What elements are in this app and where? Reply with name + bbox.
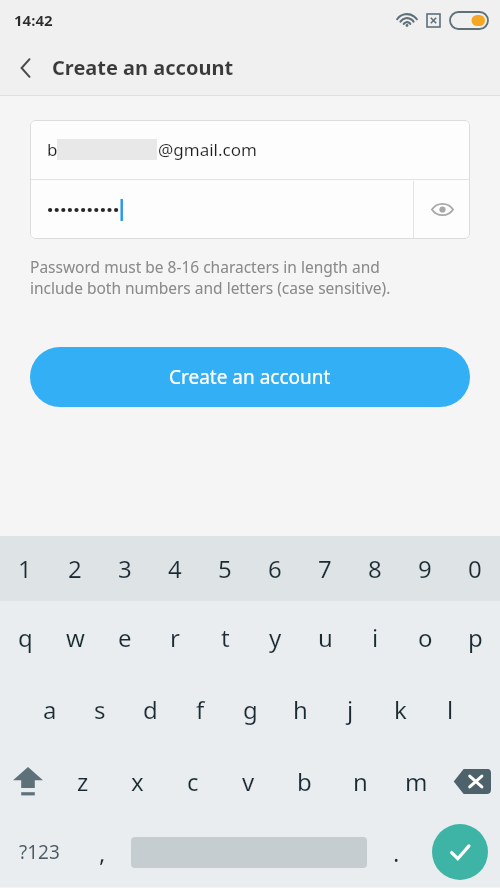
button[interactable]: h xyxy=(275,673,325,745)
staticText: u xyxy=(318,621,333,654)
staticText: g xyxy=(243,693,258,726)
staticText: o xyxy=(418,621,433,654)
button[interactable]: a xyxy=(25,673,75,745)
staticText: j xyxy=(347,693,354,726)
button[interactable]: 8 xyxy=(350,536,400,601)
button[interactable]: 4 xyxy=(150,536,200,601)
button[interactable]: 2 xyxy=(50,536,100,601)
button[interactable]: ?123 xyxy=(0,817,78,887)
button[interactable]: c xyxy=(165,745,220,817)
button[interactable]: l xyxy=(425,673,475,745)
button[interactable]: 5 xyxy=(200,536,250,601)
staticText: 7 xyxy=(318,552,332,585)
button[interactable] xyxy=(30,180,413,239)
staticText: ?123 xyxy=(19,839,60,865)
button[interactable]: 3 xyxy=(100,536,150,601)
staticText: z xyxy=(77,765,89,798)
button[interactable]: t xyxy=(200,601,250,673)
staticText: 3 xyxy=(118,552,132,585)
button[interactable]: p xyxy=(450,601,500,673)
button[interactable]: 9 xyxy=(400,536,450,601)
button[interactable]: q xyxy=(0,601,50,673)
staticText: h xyxy=(293,693,308,726)
staticText: e xyxy=(118,621,132,654)
button[interactable]: 7 xyxy=(300,536,350,601)
button[interactable]: v xyxy=(220,745,276,817)
button[interactable]: b xyxy=(276,745,332,817)
staticText: 2 xyxy=(68,552,82,585)
staticText: r xyxy=(170,621,180,654)
staticText: x xyxy=(131,765,144,798)
button[interactable]: b xyxy=(30,120,470,179)
staticText: 4 xyxy=(168,552,182,585)
button[interactable]: z xyxy=(55,745,110,817)
button[interactable]: w xyxy=(50,601,100,673)
staticText: . xyxy=(393,836,400,869)
button[interactable]: Backspace xyxy=(444,745,500,817)
button[interactable]: Create an account xyxy=(30,347,470,407)
staticText: w xyxy=(66,621,85,654)
button[interactable]: Shift xyxy=(0,745,55,817)
button[interactable]: y xyxy=(250,601,300,673)
staticText: l xyxy=(447,693,454,726)
staticText: 0 xyxy=(468,552,482,585)
staticText: s xyxy=(94,693,106,726)
button[interactable]: n xyxy=(332,745,388,817)
staticText: 8 xyxy=(368,552,382,585)
button[interactable]: 6 xyxy=(250,536,300,601)
staticText: i xyxy=(372,621,379,654)
staticText: Create an account xyxy=(169,364,331,390)
staticText: Password must be 8-16 characters in leng… xyxy=(30,256,391,299)
button[interactable]: 1 xyxy=(0,536,50,601)
button[interactable]: s xyxy=(75,673,125,745)
button[interactable]: g xyxy=(225,673,275,745)
staticText: y xyxy=(269,621,282,654)
staticText: 9 xyxy=(418,552,432,585)
staticText: q xyxy=(18,621,33,654)
button[interactable]: d xyxy=(125,673,175,745)
staticText: m xyxy=(405,765,428,798)
button[interactable]: f xyxy=(175,673,225,745)
staticText: d xyxy=(143,693,158,726)
button[interactable]: . xyxy=(372,817,420,887)
button[interactable]: m xyxy=(388,745,444,817)
button[interactable]: k xyxy=(375,673,425,745)
button[interactable]: Show password xyxy=(414,180,470,239)
staticText: k xyxy=(394,693,407,726)
button[interactable]: , xyxy=(78,817,126,887)
button[interactable]: Back xyxy=(0,42,52,94)
button[interactable]: r xyxy=(150,601,200,673)
staticText: Create an account xyxy=(52,54,234,81)
staticText: b xyxy=(47,138,58,161)
button[interactable]: x xyxy=(110,745,165,817)
staticText: p xyxy=(468,621,483,654)
staticText: , xyxy=(99,836,106,869)
button[interactable]: Enter xyxy=(432,824,488,880)
staticText: b xyxy=(297,765,312,798)
staticText: 6 xyxy=(268,552,282,585)
button[interactable]: u xyxy=(300,601,350,673)
button[interactable]: o xyxy=(400,601,450,673)
staticText: f xyxy=(196,693,205,726)
staticText: 14:42 xyxy=(14,10,53,30)
staticText: n xyxy=(353,765,368,798)
button[interactable]: 0 xyxy=(450,536,500,601)
staticText: 5 xyxy=(218,552,232,585)
button[interactable]: i xyxy=(350,601,400,673)
button[interactable]: e xyxy=(100,601,150,673)
button[interactable]: j xyxy=(325,673,375,745)
staticText: t xyxy=(221,621,230,654)
staticText: @gmail.com xyxy=(158,138,257,161)
staticText: c xyxy=(187,765,199,798)
staticText: a xyxy=(43,693,57,726)
staticText: 1 xyxy=(18,552,32,585)
staticText: v xyxy=(242,765,255,798)
